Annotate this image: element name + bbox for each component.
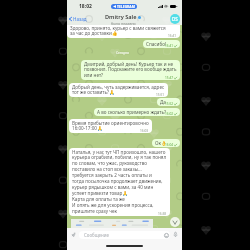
staticText: 15:47 xyxy=(165,76,174,80)
staticText: TELEGRAM xyxy=(117,4,135,9)
button[interactable]: Attach xyxy=(70,231,77,238)
staticText: Время прибытие ориентировочно 16:00-17:0… xyxy=(72,120,149,132)
staticText: DS xyxy=(172,16,178,22)
button[interactable]: Voice message xyxy=(172,231,179,238)
button[interactable]: Stickers xyxy=(163,232,169,238)
staticText: Dmitry Sale xyxy=(105,13,137,21)
button[interactable]: Сообщение xyxy=(79,231,170,239)
button[interactable]: Да xyxy=(157,98,180,106)
button[interactable]: Спасибо! xyxy=(143,40,180,48)
staticText: Назад xyxy=(73,16,87,22)
staticText: 16:03 xyxy=(140,129,149,133)
staticText: 16:02 xyxy=(165,112,174,116)
staticText: было недавно xyxy=(111,21,136,25)
staticText: Сегодня xyxy=(116,51,129,55)
staticText: 16:41 xyxy=(168,34,177,38)
staticText: Сообщение xyxy=(84,232,109,238)
staticText: Ок👌 xyxy=(155,140,177,146)
staticText: 16:41 xyxy=(165,44,174,48)
staticText: Дмитрий, добрый день! Курьер так и не по… xyxy=(84,61,177,79)
button[interactable]: А во сколько примерно ждать? xyxy=(94,108,180,116)
button[interactable]: Scroll to bottom xyxy=(170,217,180,227)
button[interactable]: Назад xyxy=(68,15,88,23)
button[interactable]: Время прибытие ориентировочно 16:00-17:0… xyxy=(69,119,152,133)
staticText: Здорово, принято, курьер с вами свяжется… xyxy=(70,25,166,37)
button[interactable]: Добрый день, чуть задерживается, адрес т… xyxy=(69,83,168,97)
staticText: Наталья, у нас тут ЧП произошло, нашего … xyxy=(72,149,167,215)
staticText: 18:02 xyxy=(79,3,92,10)
staticText: Добрый день, чуть задерживается, адрес т… xyxy=(72,84,165,96)
staticText: 16:04 xyxy=(165,143,174,147)
button[interactable]: Здорово, принято, курьер с вами свяжется… xyxy=(67,25,180,38)
button[interactable]: Ок👌 xyxy=(152,139,180,147)
button[interactable]: Profile xyxy=(170,14,180,24)
staticText: Спасибо! xyxy=(146,41,177,47)
staticText: А во сколько примерно ждать? xyxy=(97,109,177,115)
staticText: 15:51 xyxy=(156,93,165,97)
button[interactable]: Наталья, у нас тут ЧП произошло, нашего … xyxy=(69,148,170,216)
button[interactable]: Дмитрий, добрый день! Курьер так и не по… xyxy=(81,60,180,80)
staticText: Да xyxy=(160,99,177,105)
staticText: 16:38 xyxy=(158,212,167,216)
staticText: 15:52 xyxy=(165,102,174,106)
